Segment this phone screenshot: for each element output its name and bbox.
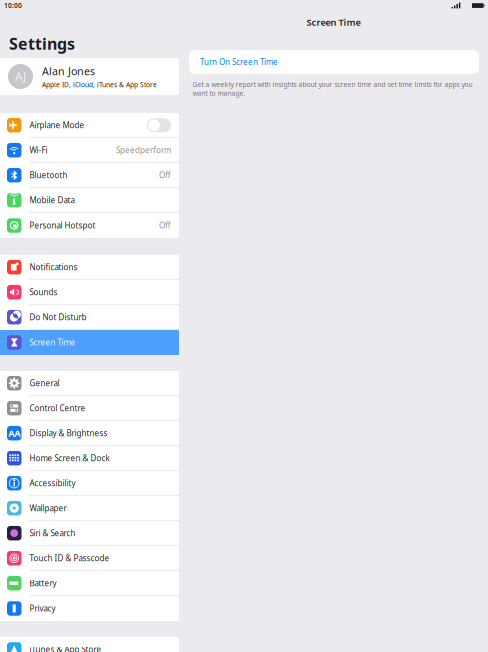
button[interactable]: iTunes & App Store [0, 637, 179, 652]
staticText: Settings [9, 33, 75, 54]
button[interactable]: Sounds [0, 280, 179, 305]
staticText: Screen Time [306, 16, 360, 28]
staticText: Battery [29, 578, 56, 588]
staticText: Airplane Mode [29, 120, 84, 130]
button[interactable]: Touch ID & Passcode [0, 546, 179, 571]
button[interactable]: Personal Hotspot [0, 213, 179, 238]
button[interactable]: AJ [0, 58, 179, 95]
staticText: Touch ID & Passcode [29, 553, 109, 563]
button[interactable]: Accessibility [0, 471, 179, 496]
button[interactable]: Siri & Search [0, 521, 179, 546]
staticText: Alan Jones [42, 64, 95, 78]
button[interactable]: General [0, 371, 179, 396]
staticText: Sounds [29, 287, 57, 297]
staticText: Screen Time [29, 337, 75, 348]
staticText: Accessibility [29, 478, 75, 488]
staticText: Siri & Search [29, 528, 75, 538]
staticText: AA [8, 427, 20, 439]
staticText: Privacy [29, 603, 55, 614]
button[interactable]: Airplane Mode [0, 113, 179, 138]
staticText: General [29, 378, 59, 388]
button[interactable]: AA [0, 421, 179, 446]
staticText: Off [159, 220, 171, 231]
button[interactable]: Mobile Data [0, 188, 179, 213]
button[interactable]: Battery [0, 571, 179, 596]
staticText: AJ [15, 68, 26, 84]
staticText: Home Screen & Dock [29, 453, 109, 463]
button[interactable]: Wallpaper [0, 496, 179, 521]
staticText: Wallpaper [29, 503, 66, 513]
button[interactable]: Turn On Screen Time [189, 50, 479, 74]
staticText: Wi-Fi [29, 145, 47, 155]
button[interactable]: Bluetooth [0, 163, 179, 188]
staticText: Display & Brightness [29, 428, 107, 438]
button[interactable]: Privacy [0, 596, 179, 621]
staticText: Apple ID, iCloud, iTunes & App Store [42, 80, 157, 89]
staticText: 10:00 [4, 1, 22, 10]
button[interactable]: Home Screen & Dock [0, 446, 179, 471]
staticText: Mobile Data [29, 195, 74, 205]
staticText: Off [159, 170, 171, 180]
button[interactable]: Screen Time [0, 330, 179, 355]
staticText: Speedperform [116, 145, 171, 155]
staticText: Do Not Disturb [29, 312, 86, 322]
staticText: Personal Hotspot [29, 220, 95, 231]
button[interactable]: Wi-Fi [0, 138, 179, 163]
staticText: Notifications [29, 262, 77, 272]
staticText: Control Centre [29, 403, 85, 413]
button[interactable]: Notifications [0, 255, 179, 280]
staticText: Bluetooth [29, 170, 67, 180]
staticText: Get a weekly report with insights about … [192, 80, 472, 98]
button[interactable]: Control Centre [0, 396, 179, 421]
staticText: iTunes & App Store [29, 644, 101, 652]
staticText: Turn On Screen Time [200, 57, 278, 67]
button[interactable]: Do Not Disturb [0, 305, 179, 330]
